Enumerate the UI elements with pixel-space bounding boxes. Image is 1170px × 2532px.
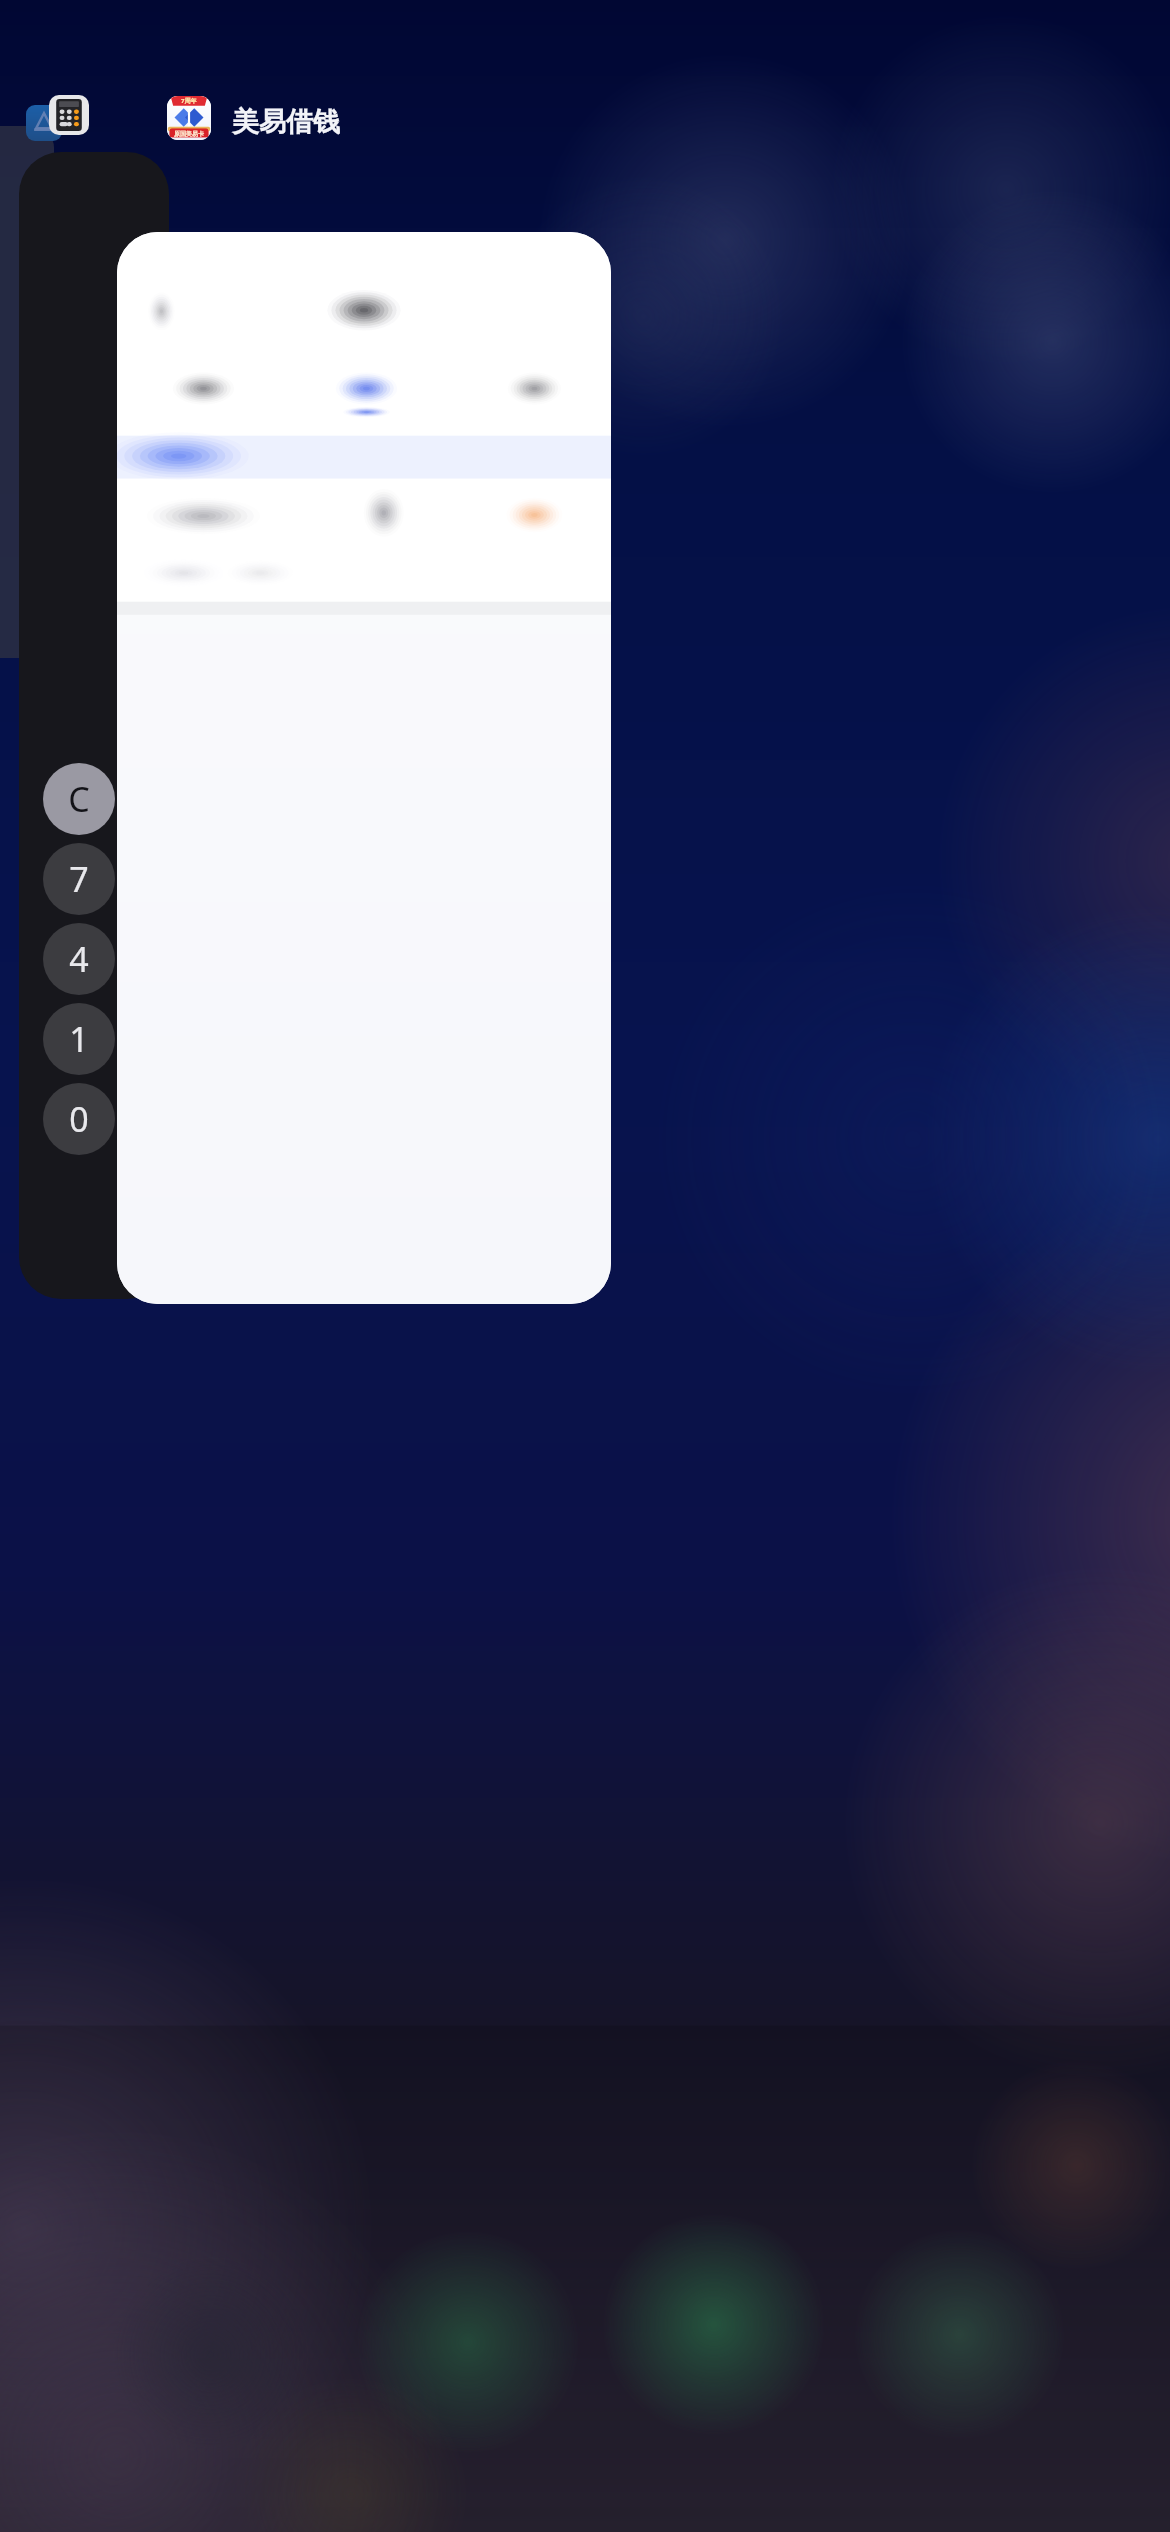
button[interactable]: App Store [26, 105, 62, 141]
staticText: 4 [69, 936, 89, 982]
button[interactable]: 1 [43, 1003, 115, 1075]
staticText: 原国美易卡 [174, 130, 204, 138]
staticText: 7 [69, 856, 89, 902]
button[interactable] [117, 232, 611, 1304]
button[interactable]: 7 [43, 843, 115, 915]
button[interactable]: Calculator [49, 95, 89, 135]
staticText: 1 [69, 1016, 89, 1062]
button[interactable]: C [19, 152, 169, 1299]
staticText: 美易借钱 [232, 105, 340, 139]
button[interactable]: 4 [43, 923, 115, 995]
button[interactable] [0, 126, 54, 658]
button[interactable]: 美易借钱 [167, 96, 211, 140]
staticText: 0 [69, 1096, 89, 1142]
staticText: 7周年 [181, 97, 197, 105]
button[interactable]: C [43, 763, 115, 835]
staticText: C [68, 776, 90, 822]
button[interactable]: 0 [43, 1083, 115, 1155]
